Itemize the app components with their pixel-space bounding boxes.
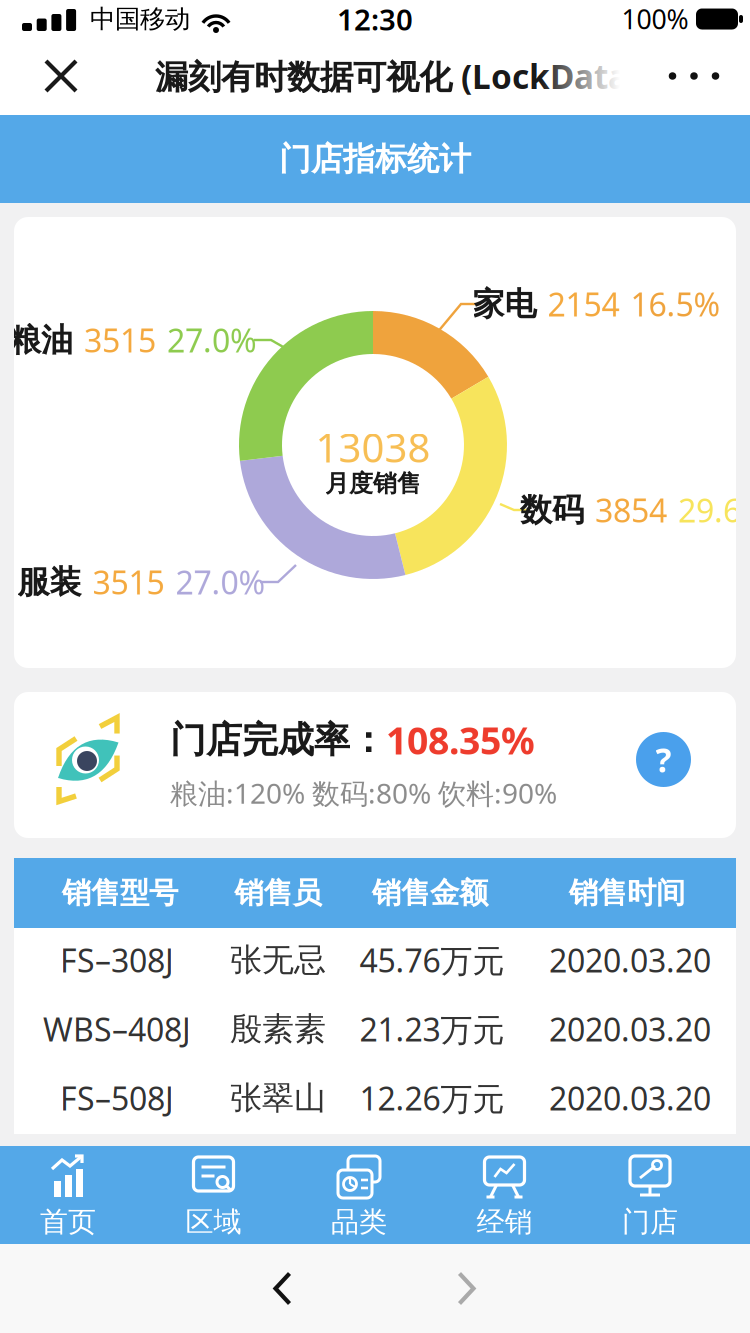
staticText: 2020.03.20 bbox=[549, 1008, 711, 1050]
button[interactable]: More bbox=[649, 46, 739, 106]
staticText: 粮油 bbox=[9, 320, 73, 360]
staticText: 13038 bbox=[315, 420, 430, 473]
staticText: 销售时间 bbox=[569, 875, 685, 911]
staticText: 首页 bbox=[40, 1205, 96, 1239]
button[interactable]: 区域 bbox=[141, 1146, 286, 1244]
staticText: 2020.03.20 bbox=[549, 1077, 711, 1119]
staticText: 45.76万元 bbox=[359, 939, 504, 981]
staticText: 21.23万元 bbox=[359, 1008, 504, 1050]
staticText: 张无忌 bbox=[230, 940, 326, 980]
staticText: 12.26万元 bbox=[359, 1077, 504, 1119]
staticText: 数码 bbox=[520, 490, 584, 530]
staticText: 门店 bbox=[622, 1205, 678, 1239]
staticText: 中国移动 bbox=[90, 3, 190, 34]
staticText: FS–508J bbox=[60, 1077, 174, 1119]
staticText: 27.0% bbox=[175, 561, 265, 603]
staticText: 经销 bbox=[476, 1205, 532, 1239]
staticText: ? bbox=[655, 737, 671, 782]
staticText: 销售金额 bbox=[372, 875, 488, 911]
staticText: 3854 bbox=[595, 489, 667, 531]
staticText: 张翠山 bbox=[230, 1078, 326, 1118]
staticText: 2020.03.20 bbox=[549, 939, 711, 981]
staticText: 16.5% bbox=[630, 283, 720, 325]
button[interactable]: 首页 bbox=[0, 1146, 140, 1244]
staticText: 殷素素 bbox=[230, 1009, 326, 1049]
staticText: 100% bbox=[621, 1, 688, 37]
staticText: 108.35% bbox=[386, 715, 535, 765]
staticText: 月度销售 bbox=[325, 469, 421, 498]
staticText: 29.6% bbox=[678, 489, 750, 531]
button[interactable]: Help bbox=[636, 732, 691, 787]
staticText: 家电 bbox=[472, 284, 536, 324]
staticText: FS–308J bbox=[60, 939, 174, 981]
button[interactable]: Forward bbox=[434, 1264, 498, 1314]
staticText: 粮油:120% 数码:80% 饮料:90% bbox=[170, 774, 557, 812]
button[interactable]: 门店 bbox=[577, 1146, 722, 1244]
staticText: 3515 bbox=[84, 319, 156, 361]
button[interactable]: 经销 bbox=[432, 1146, 577, 1244]
staticText: 销售型号 bbox=[62, 875, 178, 911]
button[interactable]: Close bbox=[21, 41, 101, 111]
staticText: 3515 bbox=[92, 561, 164, 603]
staticText: WBS–408J bbox=[43, 1008, 191, 1050]
staticText: 12:30 bbox=[337, 0, 413, 38]
staticText: 门店完成率： bbox=[170, 718, 386, 762]
staticText: 27.0% bbox=[167, 319, 257, 361]
staticText: 品类 bbox=[331, 1205, 387, 1239]
button[interactable]: Back bbox=[251, 1264, 315, 1314]
staticText: 漏刻有时数据可视化 (LockDataV bbox=[155, 54, 650, 98]
button[interactable]: 品类 bbox=[286, 1146, 431, 1244]
staticText: 门店指标统计 bbox=[279, 139, 471, 179]
staticText: 销售员 bbox=[234, 875, 321, 911]
staticText: 服装 bbox=[17, 562, 81, 602]
staticText: 2154 bbox=[547, 283, 619, 325]
staticText: 区域 bbox=[185, 1205, 241, 1239]
